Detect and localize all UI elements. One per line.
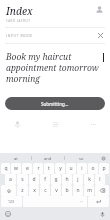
staticText: j xyxy=(77,176,79,183)
staticText: r xyxy=(37,165,40,172)
button[interactable]: List xyxy=(48,117,62,131)
button[interactable]: i xyxy=(77,163,87,174)
button[interactable]: Emoji xyxy=(3,209,13,219)
button[interactable]: y xyxy=(55,163,65,174)
button[interactable]: Shift xyxy=(1,185,16,196)
button[interactable]: l xyxy=(95,174,105,185)
staticText: o xyxy=(91,165,95,172)
staticText: INPUT MODE xyxy=(6,33,96,38)
button[interactable]: a xyxy=(5,174,16,185)
button[interactable]: z xyxy=(17,185,28,196)
button[interactable]: q xyxy=(1,163,10,174)
button[interactable]: Voice input xyxy=(97,209,107,219)
staticText: at xyxy=(14,156,18,161)
button[interactable]: j xyxy=(73,174,83,185)
staticText: ··· xyxy=(80,199,84,204)
staticText: z xyxy=(21,187,24,194)
staticText: k xyxy=(88,176,91,183)
staticText: u xyxy=(69,165,73,172)
button[interactable]: s xyxy=(17,174,28,185)
staticText: so xyxy=(79,156,84,161)
button[interactable]: h xyxy=(62,174,72,185)
button[interactable]: More xyxy=(86,117,100,131)
button[interactable]: p xyxy=(99,163,109,174)
staticText: Index xyxy=(6,4,33,18)
staticText: Book my haircut appointment tomorrow mor… xyxy=(6,51,102,84)
button[interactable]: Close xyxy=(96,31,105,40)
button[interactable]: Submitting… xyxy=(5,97,105,110)
staticText: g xyxy=(54,176,58,183)
button[interactable]: and xyxy=(32,153,64,163)
staticText: y xyxy=(59,165,62,172)
button[interactable]: 123 xyxy=(1,196,22,207)
button[interactable]: e xyxy=(22,163,32,174)
button[interactable]: Profile xyxy=(94,4,105,15)
button[interactable]: w xyxy=(11,163,21,174)
button[interactable]: so xyxy=(65,153,97,163)
staticText: m xyxy=(87,187,92,194)
button[interactable]: Backspace xyxy=(95,185,109,196)
button[interactable]: Keyboard settings xyxy=(97,153,110,163)
staticText: e xyxy=(26,165,29,172)
button[interactable]: t xyxy=(44,163,54,174)
button[interactable]: r xyxy=(33,163,43,174)
button[interactable]: m xyxy=(84,185,94,196)
staticText: n xyxy=(76,187,80,194)
button[interactable]: b xyxy=(62,185,72,196)
button[interactable]: f xyxy=(40,174,50,185)
staticText: d xyxy=(32,176,36,183)
staticText: c xyxy=(44,187,47,194)
staticText: x xyxy=(33,187,36,194)
staticText: w xyxy=(14,165,18,172)
staticText: v xyxy=(55,187,58,194)
staticText: s xyxy=(21,176,24,183)
staticText: l xyxy=(99,176,101,183)
button[interactable]: x xyxy=(29,185,39,196)
staticText: CARD LAYOUT xyxy=(6,19,31,23)
staticText: i xyxy=(81,165,83,172)
button[interactable]: d xyxy=(29,174,39,185)
staticText: p xyxy=(102,165,106,172)
button[interactable]: k xyxy=(84,174,94,185)
button[interactable]: o xyxy=(88,163,98,174)
button[interactable]: Voice xyxy=(10,117,24,131)
button[interactable]: v xyxy=(51,185,61,196)
staticText: t xyxy=(48,165,50,172)
staticText: f xyxy=(44,176,46,183)
button[interactable]: n xyxy=(73,185,83,196)
staticText: and xyxy=(44,156,52,161)
staticText: h xyxy=(65,176,69,183)
button[interactable]: INPUT MODE xyxy=(6,31,105,40)
staticText: b xyxy=(65,187,69,194)
button[interactable]: Enter xyxy=(88,196,109,207)
button[interactable]: u xyxy=(66,163,76,174)
staticText: 123 xyxy=(8,199,15,204)
button[interactable]: g xyxy=(51,174,61,185)
staticText: a xyxy=(9,176,12,183)
button[interactable]: at xyxy=(0,153,31,163)
staticText: q xyxy=(4,165,8,172)
button[interactable]: c xyxy=(40,185,50,196)
staticText: Submitting… xyxy=(41,101,69,107)
